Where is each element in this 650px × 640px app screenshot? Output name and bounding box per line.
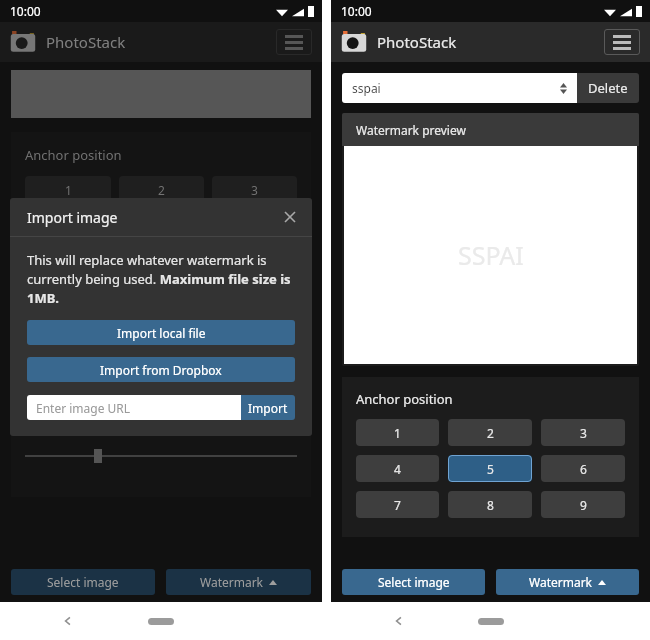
button[interactable]: 1 [25, 176, 111, 203]
staticText: Anchor position [25, 146, 122, 164]
button[interactable]: Import [241, 395, 295, 420]
staticText: 10:00 [341, 3, 372, 19]
staticText: 4 [394, 461, 401, 477]
button[interactable]: 2 [119, 176, 204, 203]
button[interactable]: Menu [604, 29, 640, 55]
staticText: 1 [65, 182, 72, 198]
button[interactable]: Select image [11, 569, 155, 595]
staticText: Import [248, 400, 288, 416]
staticText: Horizontal inset [25, 363, 115, 379]
staticText: Select image [47, 574, 119, 590]
button[interactable]: Import from Dropbox [27, 357, 295, 382]
button[interactable]: Menu [276, 29, 312, 55]
staticText: Watermark [529, 574, 593, 590]
staticText: 9 [580, 497, 587, 513]
staticText: This will replace whatever watermark is … [27, 251, 295, 307]
button[interactable]: 2 [448, 419, 532, 446]
staticText: PhotoStack [377, 32, 457, 52]
button[interactable]: Watermark [496, 569, 639, 595]
button[interactable]: 4 [356, 455, 439, 482]
staticText: sspai [352, 80, 381, 96]
staticText: Import image [27, 208, 118, 227]
button[interactable]: sspai [342, 73, 577, 103]
button[interactable]: 9 [541, 491, 625, 518]
staticText: Delete [588, 79, 628, 97]
staticText: Import local file [117, 325, 206, 341]
button[interactable]: 3 [541, 419, 625, 446]
staticText: PhotoStack [46, 32, 126, 52]
staticText: 3 [580, 425, 587, 441]
button[interactable]: Delete [577, 73, 639, 103]
staticText: Select image [378, 574, 450, 590]
staticText: Watermark preview [356, 122, 466, 138]
button[interactable]: Enter image URL [27, 395, 241, 420]
staticText: 6 [580, 461, 587, 477]
staticText: 3 [251, 182, 258, 198]
button[interactable]: Close [280, 207, 300, 227]
button[interactable]: 8 [448, 491, 532, 518]
button[interactable]: 1 [356, 419, 439, 446]
staticText: 1 [394, 425, 401, 441]
button[interactable]: Watermark [166, 569, 311, 595]
staticText: 5 [487, 461, 494, 477]
staticText: 2 [158, 182, 165, 198]
staticText: Enter image URL [36, 400, 131, 416]
staticText: Anchor position [356, 390, 453, 408]
staticText: Watermark [200, 574, 264, 590]
staticText: Import from Dropbox [100, 362, 222, 378]
button[interactable]: 7 [356, 491, 439, 518]
staticText: 8 [487, 497, 494, 513]
staticText: 7 [394, 497, 401, 513]
staticText: SSPAI [458, 238, 524, 272]
staticText: Vertical inset [25, 421, 98, 437]
button[interactable]: 6 [541, 455, 625, 482]
button[interactable]: 5 [448, 455, 532, 482]
button[interactable]: Select image [342, 569, 485, 595]
staticText: 10:00 [10, 3, 41, 19]
staticText: 2 [487, 425, 494, 441]
button[interactable]: Import local file [27, 320, 295, 345]
button[interactable]: 3 [212, 176, 297, 203]
